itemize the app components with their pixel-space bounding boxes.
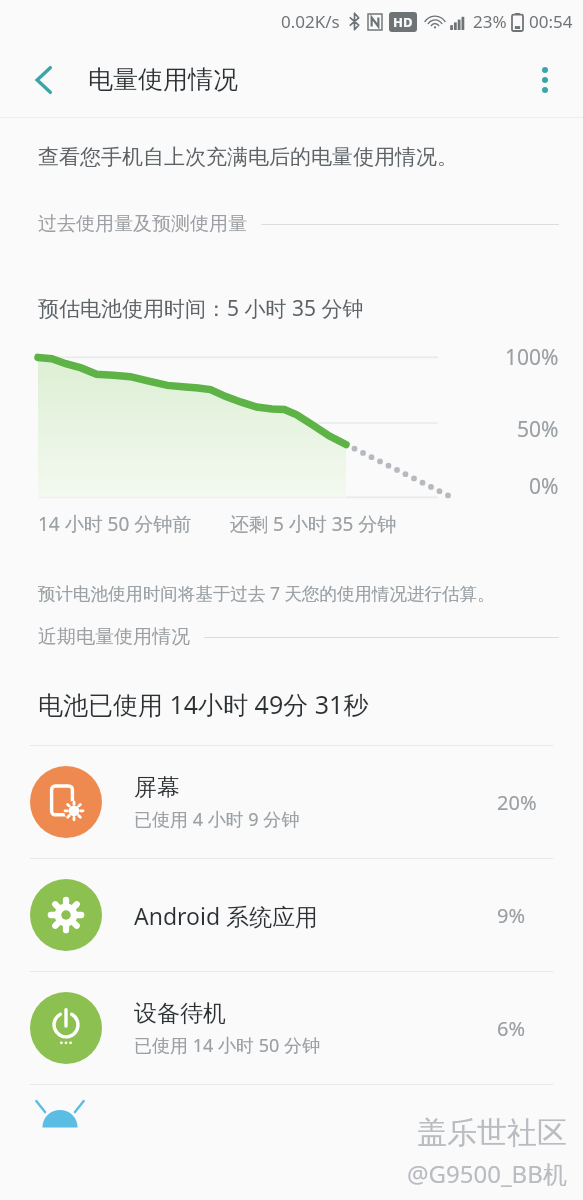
staticText: 0.02K/s	[281, 10, 340, 33]
staticText: 查看您手机自上次充满电后的电量使用情况。	[38, 144, 458, 170]
staticText: 近期电量使用情况	[38, 625, 190, 649]
staticText: 14 小时 50 分钟前	[38, 511, 192, 537]
staticText: 还剩 5 小时 35 分钟	[230, 511, 397, 537]
staticText: 100%	[505, 343, 559, 372]
staticText: 预计电池使用时间将基于过去 7 天您的使用情况进行估算。	[38, 581, 495, 605]
staticText: 已使用 4 小时 9 分钟	[134, 807, 300, 832]
staticText: 电池已使用 14小时 49分 31秒	[38, 687, 369, 721]
staticText: HD	[393, 13, 413, 31]
staticText: 预估电池使用时间：5 小时 35 分钟	[38, 294, 364, 323]
staticText: 设备待机	[134, 999, 226, 1028]
staticText: 已使用 14 小时 50 分钟	[134, 1033, 320, 1058]
staticText: 50%	[517, 415, 559, 444]
button[interactable]: More options	[521, 56, 569, 104]
button[interactable]: Android 系统应用	[0, 859, 583, 971]
staticText: 盖乐世社区	[417, 1114, 567, 1152]
staticText: 00:54	[529, 10, 573, 33]
staticText: 电量使用情况	[88, 64, 238, 95]
staticText: 0%	[529, 472, 559, 501]
button[interactable]: Back	[20, 56, 68, 104]
staticText: 20%	[497, 789, 553, 816]
staticText: 9%	[497, 902, 553, 929]
staticText: 过去使用量及预测使用量	[38, 212, 247, 236]
staticText: 6%	[497, 1015, 553, 1042]
staticText: @G9500_BB机	[407, 1157, 567, 1190]
staticText: 23%	[473, 10, 507, 33]
staticText: 屏幕	[134, 773, 180, 802]
button[interactable]: 设备待机	[0, 972, 583, 1084]
staticText: Android 系统应用	[134, 900, 319, 931]
button[interactable]: 屏幕	[0, 746, 583, 858]
